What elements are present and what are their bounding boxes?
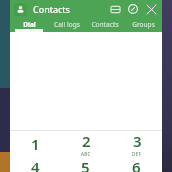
button[interactable]: Close: [143, 1, 159, 17]
button[interactable]: Speed dial: [125, 1, 141, 17]
button[interactable]: Contacts: [86, 18, 124, 32]
staticText: Contacts: [91, 20, 119, 29]
staticText: DEF: [132, 151, 142, 157]
button[interactable]: Groups: [124, 18, 162, 32]
button[interactable]: Dial: [10, 18, 48, 32]
button[interactable]: Change view: [107, 1, 123, 17]
button[interactable]: 6: [111, 157, 162, 172]
staticText: Contacts: [33, 3, 70, 15]
staticText: Dial: [23, 20, 36, 29]
staticText: Call logs: [54, 20, 80, 29]
button[interactable]: 4: [10, 157, 60, 172]
button[interactable]: 5: [60, 157, 111, 172]
button[interactable]: Contacts app icon: [14, 3, 27, 16]
staticText: 1: [31, 134, 40, 154]
button[interactable]: Call logs: [48, 18, 86, 32]
button[interactable]: 3: [111, 131, 162, 157]
staticText: 2: [82, 131, 91, 151]
staticText: Groups: [132, 20, 155, 29]
staticText: 3: [133, 131, 142, 151]
button[interactable]: 1: [10, 131, 60, 157]
staticText: 6: [132, 157, 141, 172]
staticText: 4: [31, 157, 40, 172]
staticText: 5: [81, 157, 90, 172]
button[interactable]: 2: [60, 131, 111, 157]
staticText: ABC: [81, 151, 91, 157]
